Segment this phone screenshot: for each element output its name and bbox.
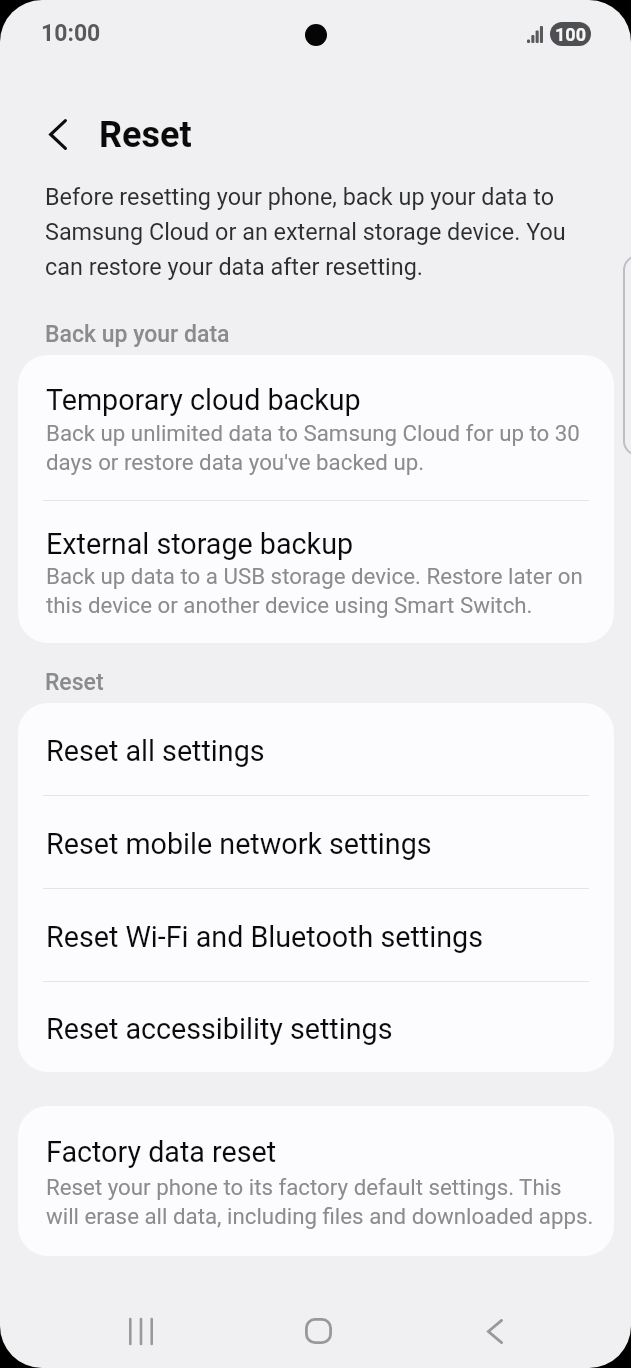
staticText: Reset xyxy=(99,114,192,156)
staticText: Reset Wi-Fi and Bluetooth settings xyxy=(46,920,483,954)
staticText: Back up your data xyxy=(45,321,230,348)
staticText: External storage backup xyxy=(46,528,354,561)
staticText: 10:00 xyxy=(41,20,101,47)
button[interactable]: Reset mobile network settings xyxy=(18,796,614,888)
button[interactable]: Reset all settings xyxy=(18,703,614,795)
staticText: Factory data reset xyxy=(46,1136,277,1169)
button[interactable]: External storage backup xyxy=(18,501,614,643)
button[interactable]: Reset Wi-Fi and Bluetooth settings xyxy=(18,889,614,981)
button[interactable]: Back xyxy=(29,105,87,163)
button[interactable]: Back xyxy=(463,1299,527,1363)
button[interactable]: Recent apps xyxy=(109,1299,173,1363)
button[interactable]: Temporary cloud backup xyxy=(18,355,614,500)
staticText: Temporary cloud backup xyxy=(46,384,361,417)
staticText: Back up unlimited data to Samsung Cloud … xyxy=(46,418,598,476)
button[interactable]: Home xyxy=(286,1299,350,1363)
staticText: Reset accessibility settings xyxy=(46,1012,393,1046)
staticText: Back up data to a USB storage device. Re… xyxy=(46,561,598,619)
button[interactable]: Factory data reset xyxy=(18,1106,614,1256)
staticText: Reset all settings xyxy=(46,734,265,768)
staticText: Before resetting your phone, back up you… xyxy=(45,177,585,282)
staticText: Reset your phone to its factory default … xyxy=(46,1172,598,1230)
staticText: Reset mobile network settings xyxy=(46,827,432,861)
staticText: Reset xyxy=(45,669,104,696)
staticText: 100 xyxy=(555,24,586,45)
button[interactable]: Reset accessibility settings xyxy=(18,982,614,1072)
